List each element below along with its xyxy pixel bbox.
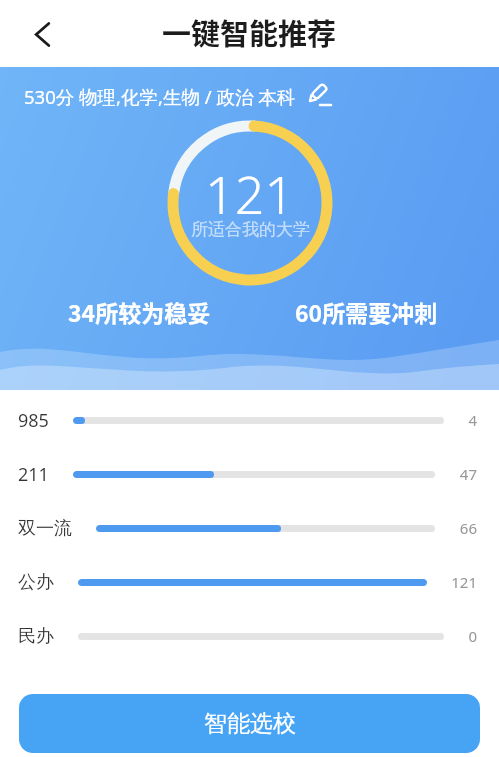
staticText: 47 (459, 464, 477, 484)
staticText: 所适合我的大学 (191, 219, 310, 240)
staticText: 公办 (18, 571, 54, 594)
staticText: 民办 (18, 625, 54, 648)
staticText: 0 (468, 626, 477, 646)
staticText: 双一流 (18, 517, 72, 540)
button[interactable] (24, 16, 60, 52)
staticText: 4 (468, 410, 477, 430)
button[interactable]: 530分 物理,化学,生物 / 政治 本科 (24, 83, 332, 109)
staticText: 985 (18, 408, 49, 433)
staticText: 211 (18, 462, 49, 487)
button[interactable]: 智能选校 (19, 694, 480, 753)
staticText: 智能选校 (204, 709, 296, 738)
staticText: 121 (451, 572, 477, 592)
staticText: 60所需要冲刺 (295, 295, 438, 328)
staticText: 66 (459, 518, 477, 538)
staticText: 530分 物理,化学,生物 / 政治 本科 (24, 84, 296, 109)
staticText: 121 (205, 158, 295, 229)
staticText: 34所较为稳妥 (68, 295, 211, 328)
staticText: 一键智能推荐 (162, 11, 337, 53)
